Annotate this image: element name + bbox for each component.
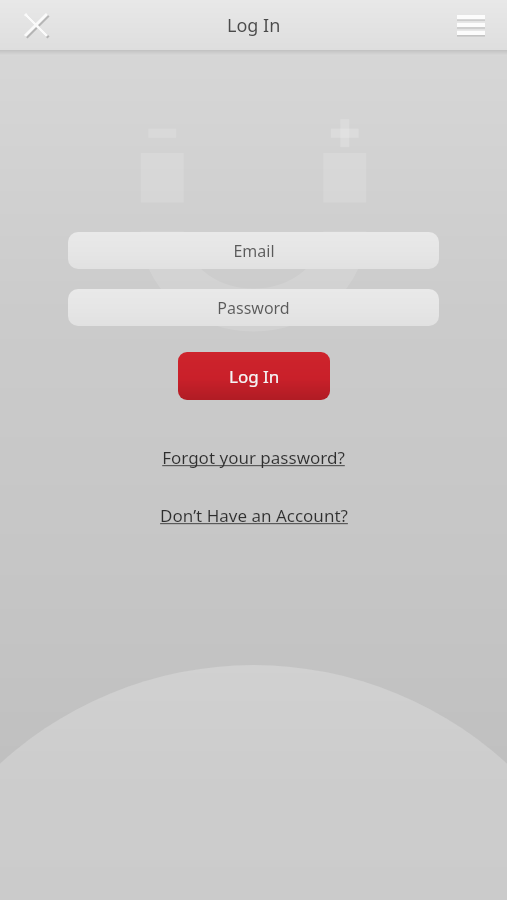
- button[interactable]: Forgot your password?: [156, 443, 351, 472]
- button[interactable]: Close: [14, 3, 58, 47]
- staticText: Forgot your password?: [162, 446, 345, 469]
- button[interactable]: Log In: [178, 352, 330, 400]
- staticText: Log In: [229, 365, 280, 388]
- button[interactable]: Email: [68, 232, 439, 269]
- button[interactable]: Password: [68, 289, 439, 326]
- staticText: Email: [233, 240, 275, 262]
- staticText: Log In: [227, 13, 281, 38]
- button[interactable]: Don’t Have an Account?: [154, 501, 354, 530]
- staticText: Don’t Have an Account?: [160, 504, 348, 527]
- staticText: Password: [217, 297, 290, 319]
- button[interactable]: Menu: [449, 3, 493, 47]
